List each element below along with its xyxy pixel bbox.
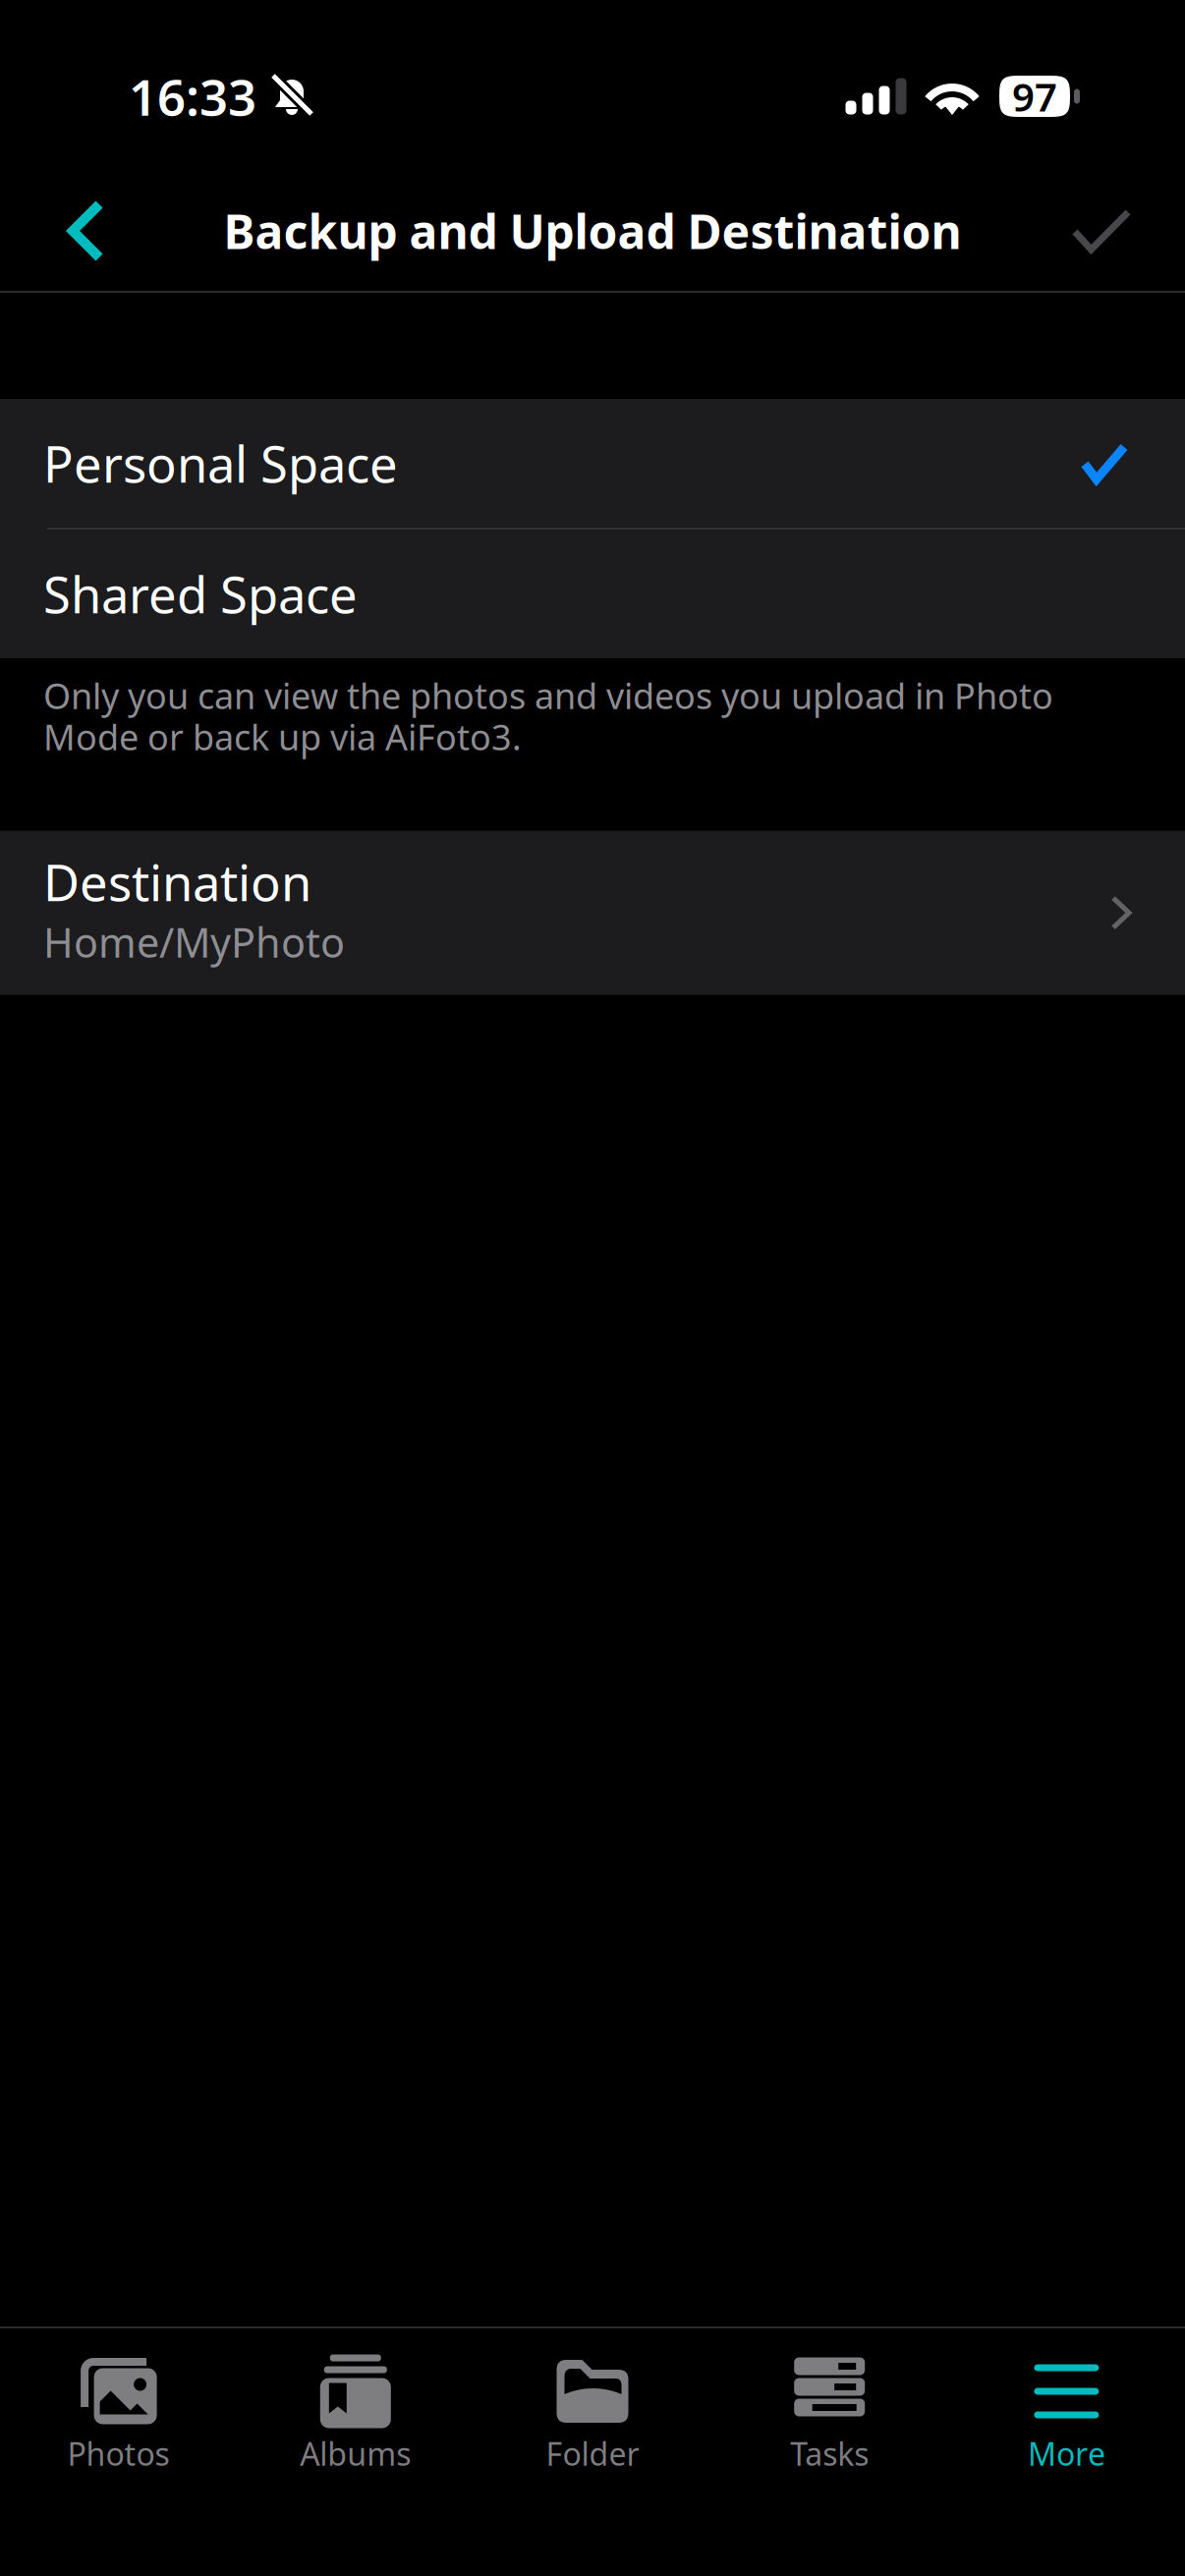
button[interactable]: Done bbox=[1046, 176, 1157, 286]
staticText: Albums bbox=[300, 2433, 411, 2474]
staticText: 16:33 bbox=[129, 63, 256, 129]
staticText: 97 bbox=[1012, 70, 1057, 122]
button[interactable]: Tasks bbox=[711, 2358, 948, 2495]
button[interactable]: More bbox=[948, 2358, 1185, 2495]
staticText: Photos bbox=[67, 2433, 170, 2474]
button[interactable]: Folder bbox=[474, 2358, 711, 2495]
staticText: Only you can view the photos and videos … bbox=[43, 672, 1053, 719]
staticText: Home/MyPhoto bbox=[43, 915, 345, 969]
button[interactable]: Shared Space bbox=[0, 530, 1185, 658]
button[interactable]: Destination bbox=[0, 831, 1185, 995]
staticText: Tasks bbox=[790, 2433, 869, 2474]
staticText: Folder bbox=[546, 2433, 639, 2474]
staticText: Mode or back up via AiFoto3. bbox=[43, 713, 522, 760]
button[interactable]: Back bbox=[31, 176, 141, 286]
button[interactable]: Albums bbox=[237, 2358, 474, 2495]
staticText: Shared Space bbox=[43, 561, 358, 627]
button[interactable]: Photos bbox=[0, 2358, 237, 2495]
staticText: Backup and Upload Destination bbox=[224, 200, 961, 262]
staticText: Destination bbox=[43, 849, 311, 915]
button[interactable]: Personal Space bbox=[0, 399, 1185, 528]
staticText: Personal Space bbox=[43, 430, 398, 496]
staticText: More bbox=[1028, 2433, 1105, 2474]
